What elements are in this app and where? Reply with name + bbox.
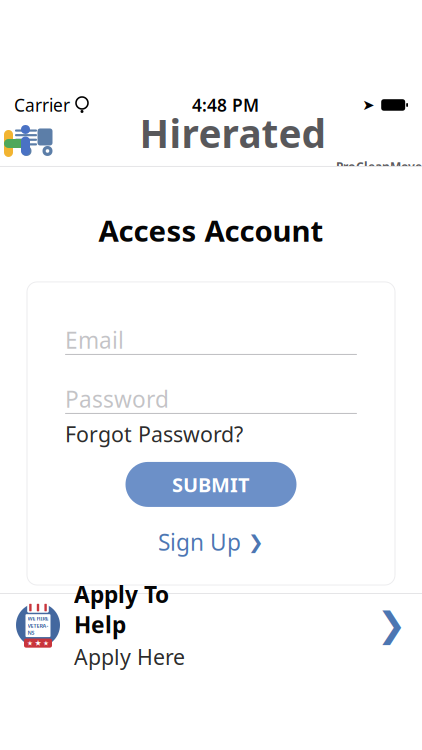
staticText: Apply Here xyxy=(74,642,185,671)
button[interactable]: SUBMIT xyxy=(125,462,296,507)
staticText: WE HIRE xyxy=(27,615,48,622)
staticText: ★ xyxy=(27,639,33,647)
button[interactable]: Sign Up xyxy=(148,521,274,563)
staticText: Carrier xyxy=(14,93,70,116)
button[interactable]: Forgot Password? xyxy=(65,414,357,450)
staticText: Access Account xyxy=(98,211,323,250)
staticText: Password xyxy=(65,384,169,414)
staticText: ❯ xyxy=(248,531,264,553)
staticText: Hirerated xyxy=(139,107,325,159)
staticText: ProCleanMove xyxy=(336,159,422,175)
staticText: ➤ xyxy=(362,97,374,113)
staticText: Email xyxy=(65,325,124,355)
staticText: Forgot Password? xyxy=(65,420,243,448)
staticText: SUBMIT xyxy=(172,471,250,498)
staticText: Sign Up xyxy=(158,527,241,557)
staticText: Apply To Help xyxy=(74,579,169,639)
staticText: ★ xyxy=(34,639,41,648)
staticText: 4:48 PM xyxy=(192,93,259,116)
button[interactable]: WE HIRE xyxy=(0,594,422,656)
staticText: ❯ xyxy=(377,605,406,645)
button[interactable]: Moving services xyxy=(0,119,58,163)
staticText: VETERANS xyxy=(27,622,48,636)
staticText: ★ xyxy=(43,639,49,647)
